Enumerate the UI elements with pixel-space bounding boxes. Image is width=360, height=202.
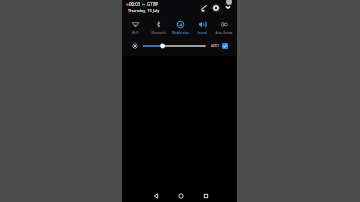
button[interactable]: Auto brightness xyxy=(222,43,228,49)
button[interactable]: Home xyxy=(175,190,186,201)
staticText: Bluetooth xyxy=(151,31,166,34)
staticText: Mobile data xyxy=(172,31,189,34)
button[interactable]: Collapse xyxy=(223,2,232,11)
button[interactable]: Bluetooth xyxy=(147,19,169,34)
staticText: AUTO xyxy=(211,44,219,48)
staticText: 00:05 xyxy=(129,1,141,7)
staticText: Thursday, 15 July xyxy=(128,8,160,13)
button[interactable]: User profile xyxy=(225,0,233,6)
button[interactable]: Settings xyxy=(211,3,220,12)
staticText: Wi-Fi xyxy=(132,31,139,34)
button[interactable]: Brightness xyxy=(144,43,205,49)
staticText: Sound xyxy=(197,31,207,34)
button[interactable]: Back xyxy=(150,190,161,201)
button[interactable]: Sound xyxy=(191,19,213,34)
staticText: Auto-Rotate xyxy=(215,31,233,34)
button[interactable]: Recents xyxy=(200,190,211,201)
button[interactable]: Auto-Rotate xyxy=(213,19,235,34)
staticText: GTBP xyxy=(147,1,159,7)
button[interactable]: Wi-Fi xyxy=(124,19,147,34)
button[interactable]: Mobile data xyxy=(169,19,191,34)
button[interactable]: Edit xyxy=(199,3,208,12)
